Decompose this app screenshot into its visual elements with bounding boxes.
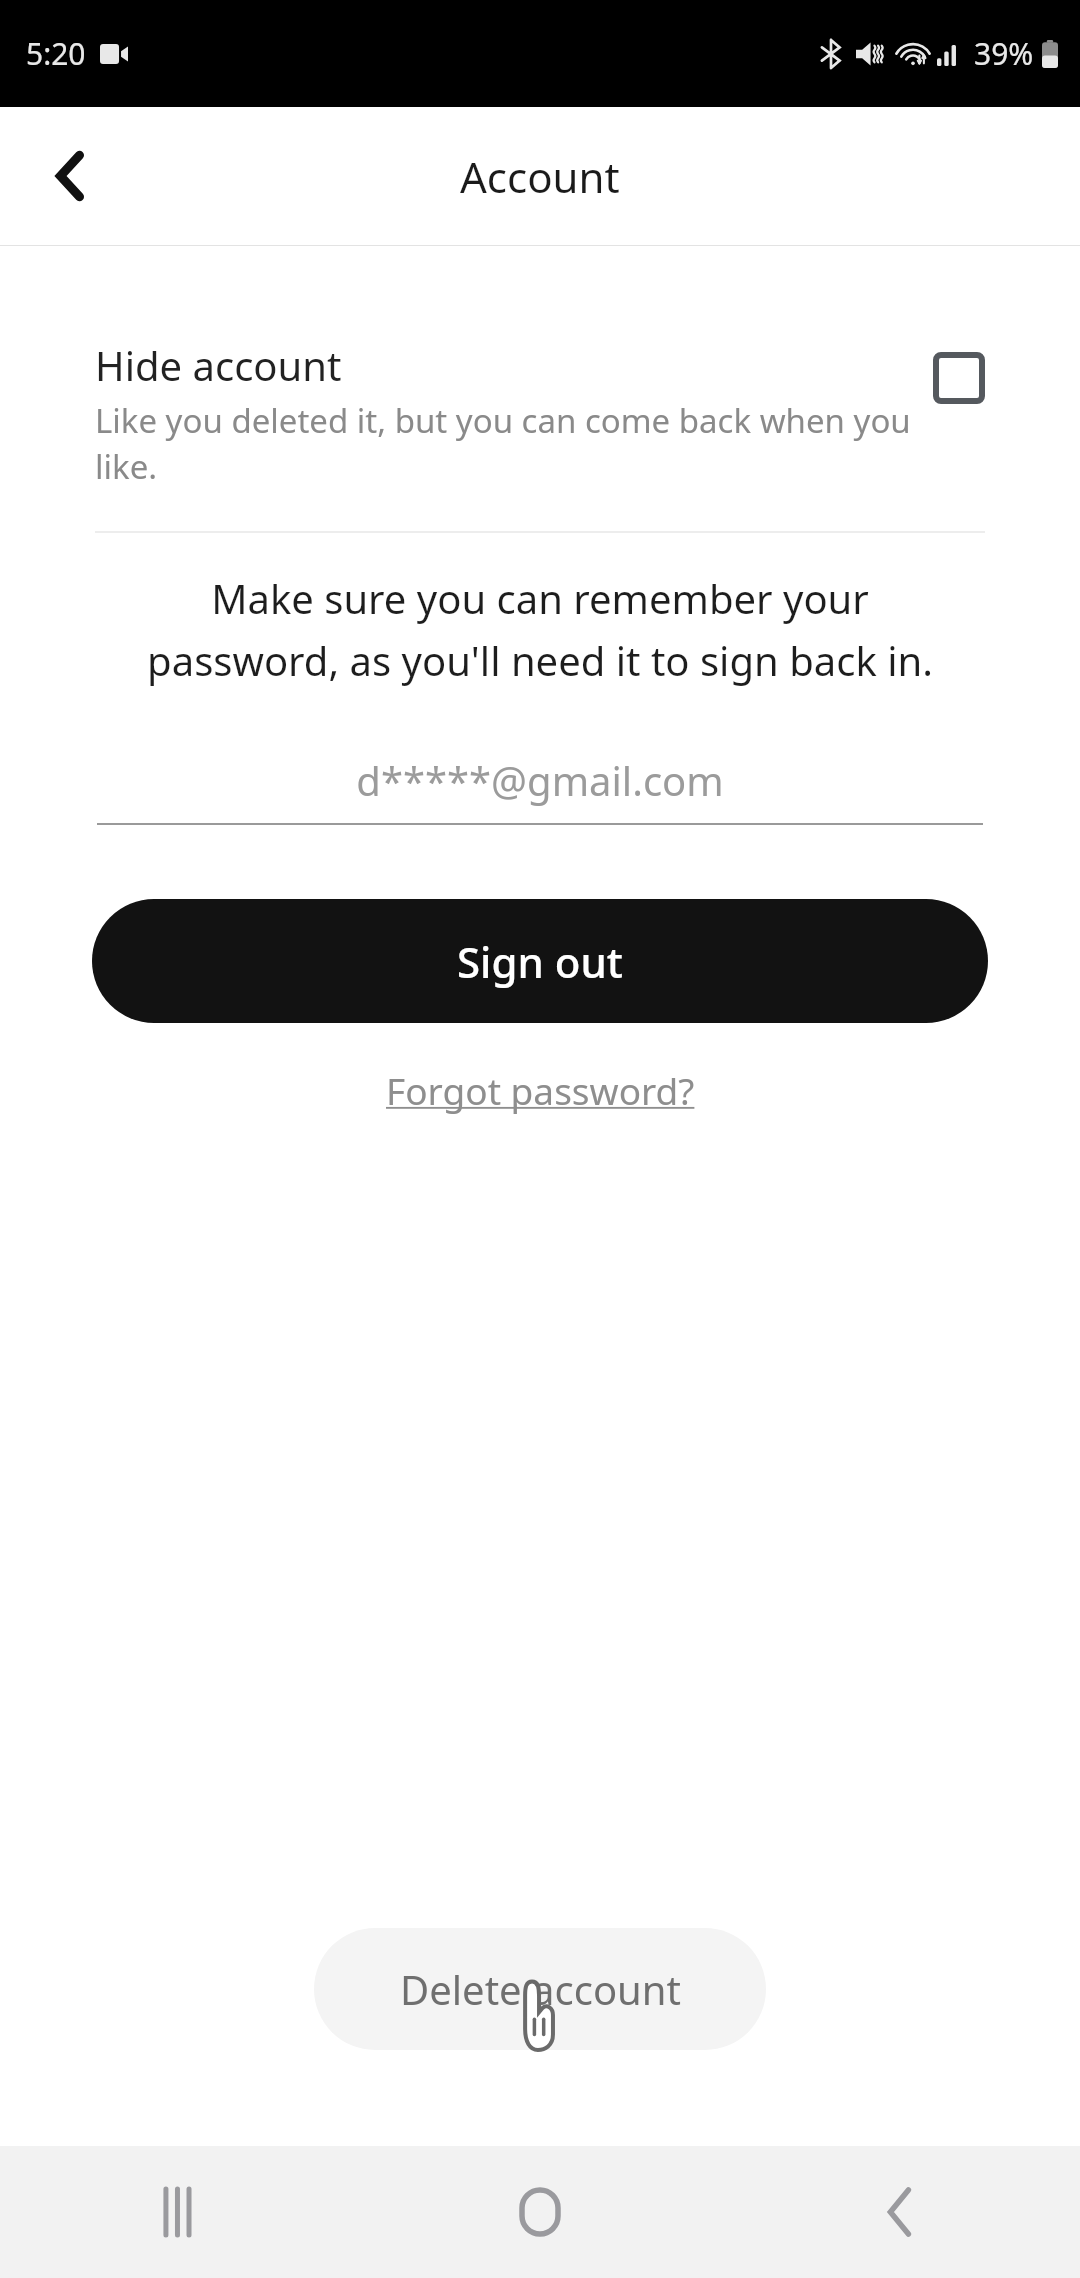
staticText: 39%: [974, 33, 1034, 74]
button[interactable]: Back: [22, 128, 118, 224]
button[interactable]: Delete account: [314, 1928, 766, 2050]
button[interactable]: Back: [720, 2146, 1080, 2278]
button[interactable]: Home: [360, 2146, 720, 2278]
staticText: Like you deleted it, but you can come ba…: [95, 398, 913, 489]
button[interactable]: Hide account: [0, 338, 1080, 489]
button[interactable]: Hide account checkbox: [933, 352, 985, 404]
staticText: Make sure you can remember your password…: [110, 571, 970, 687]
button[interactable]: Forgot password?: [366, 1057, 715, 1123]
staticText: Forgot password?: [386, 1065, 695, 1115]
staticText: 5:20: [26, 33, 86, 74]
staticText: d*****@gmail.com: [97, 753, 983, 807]
staticText: Delete account: [400, 1962, 681, 2016]
staticText: Hide account: [95, 338, 342, 392]
staticText: Sign out: [457, 933, 623, 990]
button[interactable]: Sign out: [92, 899, 988, 1023]
button[interactable]: Recents: [0, 2146, 360, 2278]
staticText: Account: [460, 148, 620, 205]
